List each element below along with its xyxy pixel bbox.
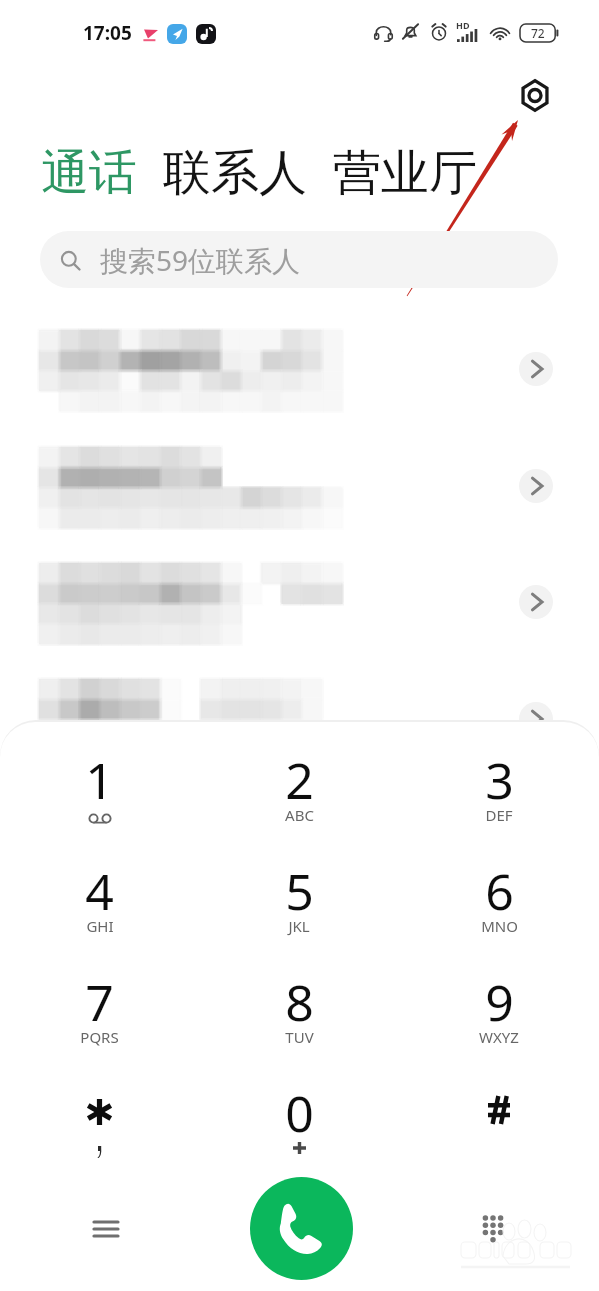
button[interactable]: 1 <box>0 738 199 849</box>
button[interactable]: Open contact <box>519 702 553 736</box>
staticText: 5 <box>285 857 314 925</box>
staticText: 9 <box>485 968 514 1036</box>
button[interactable]: 通话 <box>39 141 139 205</box>
staticText: GHI <box>86 916 114 936</box>
staticText: 0 <box>285 1079 314 1147</box>
staticText: 6 <box>485 857 514 925</box>
button[interactable]: 3 <box>399 738 599 849</box>
button[interactable]: 9 <box>399 960 599 1071</box>
staticText: WXYZ <box>479 1027 519 1047</box>
button[interactable]: Keypad <box>468 1204 517 1253</box>
staticText: 8 <box>285 968 314 1036</box>
button[interactable]: Open contact <box>519 352 553 386</box>
button[interactable] <box>0 1071 199 1182</box>
staticText: 72 <box>531 25 545 41</box>
staticText: MNO <box>481 916 518 936</box>
button[interactable]: Call <box>250 1177 353 1280</box>
staticText: 3 <box>485 746 514 814</box>
staticText: 营业厅 <box>333 143 477 203</box>
button[interactable]: 0 <box>199 1071 399 1182</box>
staticText: 4 <box>85 857 114 925</box>
staticText: 17:05 <box>83 20 132 46</box>
button[interactable]: 营业厅 <box>331 141 479 205</box>
button[interactable]: 2 <box>199 738 399 849</box>
staticText: PQRS <box>80 1027 119 1047</box>
button[interactable]: Menu <box>81 1204 130 1253</box>
staticText: DEF <box>485 805 513 825</box>
staticText: 1 <box>85 746 114 814</box>
staticText: TUV <box>285 1027 314 1047</box>
button[interactable]: 5 <box>199 849 399 960</box>
button[interactable]: 6 <box>399 849 599 960</box>
button[interactable]: Open contact <box>519 585 553 619</box>
staticText: 通话 <box>41 143 137 203</box>
staticText: ABC <box>285 805 314 825</box>
button[interactable]: Open contact <box>519 469 553 503</box>
staticText: 搜索59位联系人 <box>100 241 301 279</box>
staticText: HD <box>456 19 470 31</box>
button[interactable]: 8 <box>199 960 399 1071</box>
button[interactable]: 搜索59位联系人 <box>40 231 558 288</box>
staticText: JKL <box>288 916 310 936</box>
staticText: 7 <box>85 968 114 1036</box>
button[interactable]: Settings <box>509 68 561 120</box>
button[interactable]: 联系人 <box>161 141 309 205</box>
staticText: 联系人 <box>163 143 307 203</box>
button[interactable]: 4 <box>0 849 199 960</box>
button[interactable] <box>399 1071 599 1182</box>
staticText: 2 <box>285 746 314 814</box>
button[interactable]: 7 <box>0 960 199 1071</box>
